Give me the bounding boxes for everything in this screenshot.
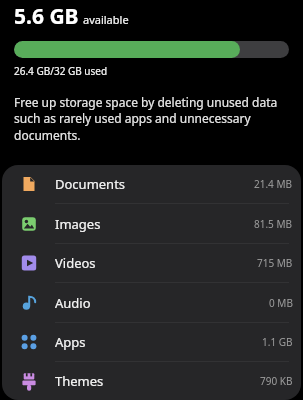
staticText: 21.4 MB xyxy=(254,177,293,191)
staticText: Audio xyxy=(55,294,91,312)
staticText: 0 MB xyxy=(269,296,293,310)
staticText: 715 MB xyxy=(257,256,293,270)
staticText: 81.5 MB xyxy=(254,217,293,231)
staticText: Documents xyxy=(55,175,126,193)
staticText: available xyxy=(83,12,129,27)
button[interactable]: Audio xyxy=(2,283,301,322)
button[interactable]: Videos xyxy=(2,244,301,282)
button[interactable]: Themes xyxy=(2,362,301,400)
staticText: 1.1 GB xyxy=(262,335,293,349)
staticText: 790 KB xyxy=(260,374,293,388)
button[interactable]: Apps xyxy=(2,323,301,361)
staticText: Themes xyxy=(55,372,104,390)
staticText: 5.6 GB xyxy=(14,2,79,31)
staticText: Images xyxy=(55,215,101,233)
staticText: Apps xyxy=(55,333,86,351)
button[interactable]: Documents xyxy=(2,165,301,203)
staticText: Videos xyxy=(55,254,96,272)
button[interactable]: Images xyxy=(2,204,301,243)
staticText: Free up storage space by deleting unused… xyxy=(14,94,278,144)
staticText: 26.4 GB/32 GB used xyxy=(14,64,108,78)
